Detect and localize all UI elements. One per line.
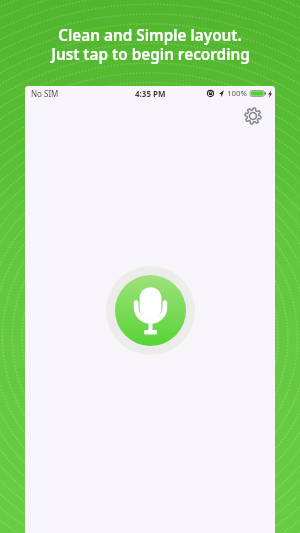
- staticText: Clean and Simple layout.: [58, 25, 242, 46]
- staticText: 4:35 PM: [135, 88, 166, 99]
- button[interactable]: Record: [115, 275, 186, 346]
- staticText: No SIM: [31, 88, 59, 99]
- staticText: Just tap to begin recording: [51, 44, 250, 65]
- staticText: 100%: [227, 88, 247, 99]
- button[interactable]: Settings: [241, 104, 265, 128]
